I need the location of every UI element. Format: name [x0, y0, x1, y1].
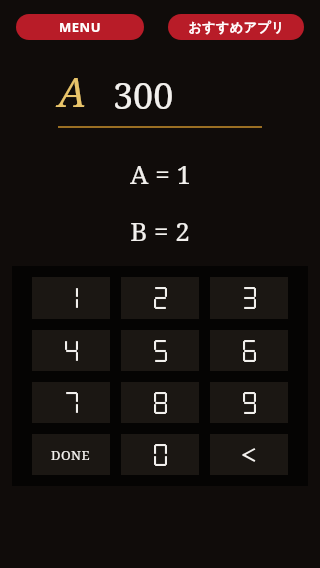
button[interactable]: Backspace [210, 434, 288, 475]
button[interactable] [121, 330, 199, 371]
button[interactable] [210, 277, 288, 319]
button[interactable] [32, 330, 110, 371]
button[interactable]: おすすめアプリ [168, 14, 304, 40]
staticText: A [58, 64, 87, 118]
button[interactable]: DONE [32, 434, 110, 475]
button[interactable] [121, 277, 199, 319]
button[interactable] [32, 382, 110, 423]
button[interactable] [32, 277, 110, 319]
button[interactable] [121, 382, 199, 423]
staticText: 300 [113, 71, 174, 120]
button[interactable] [210, 382, 288, 423]
staticText: B = 2 [130, 213, 190, 248]
staticText: DONE [51, 446, 91, 464]
staticText: おすすめアプリ [188, 19, 285, 35]
staticText: A = 1 [130, 156, 191, 191]
staticText: MENU [59, 18, 101, 36]
button[interactable] [121, 434, 199, 475]
button[interactable] [210, 330, 288, 371]
button[interactable]: MENU [16, 14, 144, 40]
